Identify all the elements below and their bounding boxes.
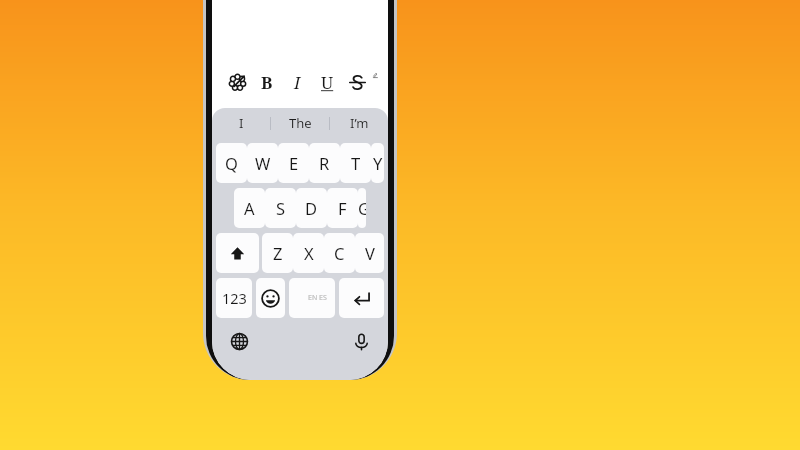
button[interactable]: The [271, 108, 329, 138]
staticText: R [319, 152, 330, 174]
staticText: I [239, 114, 244, 132]
staticText: V [365, 242, 375, 264]
staticText: Q [225, 152, 238, 174]
button[interactable]: D [296, 188, 327, 228]
staticText: W [255, 152, 271, 174]
button[interactable]: I [282, 67, 312, 97]
button[interactable]: I’m [330, 108, 388, 138]
button[interactable]: F [327, 188, 358, 228]
button[interactable]: Q [216, 143, 247, 183]
staticText: I’m [350, 114, 369, 132]
button[interactable]: A [234, 188, 265, 228]
button[interactable]: Strikethrough [342, 67, 372, 97]
button[interactable]: U [312, 67, 342, 97]
button[interactable]: R [309, 143, 340, 183]
button[interactable]: EN ES [289, 278, 335, 318]
staticText: F [338, 197, 347, 219]
button[interactable]: Shift [216, 233, 259, 273]
button[interactable]: T [340, 143, 371, 183]
staticText: C [334, 242, 345, 264]
staticText: EN ES [308, 293, 327, 303]
staticText: T [351, 152, 361, 174]
button[interactable]: G [358, 188, 366, 228]
staticText: The [289, 114, 312, 132]
button[interactable]: 123 [216, 278, 252, 318]
staticText: Y [373, 152, 383, 174]
staticText: A [244, 197, 255, 219]
staticText: B [261, 71, 273, 94]
button[interactable]: B [252, 67, 282, 97]
button[interactable]: X [293, 233, 324, 273]
button[interactable]: E [278, 143, 309, 183]
staticText: 123 [222, 288, 247, 308]
staticText: G [358, 197, 366, 219]
button[interactable]: AI writing tools [222, 67, 252, 97]
staticText: X [304, 242, 314, 264]
button[interactable]: Emoji [256, 278, 285, 318]
button[interactable]: W [247, 143, 278, 183]
button[interactable]: S [265, 188, 296, 228]
staticText: U [321, 71, 334, 94]
button[interactable]: V [355, 233, 384, 273]
staticText: Z [273, 242, 283, 264]
staticText: I [294, 71, 301, 94]
button[interactable]: Change keyboard [225, 327, 253, 355]
staticText: S [276, 197, 286, 219]
button[interactable]: Voice input [347, 327, 375, 355]
button[interactable]: Highlighter [372, 67, 378, 97]
staticText: E [289, 152, 299, 174]
button[interactable]: C [324, 233, 355, 273]
button[interactable]: Return [339, 278, 384, 318]
button[interactable]: Z [262, 233, 293, 273]
button[interactable]: Y [371, 143, 384, 183]
staticText: D [305, 197, 318, 219]
button[interactable]: I [212, 108, 270, 138]
